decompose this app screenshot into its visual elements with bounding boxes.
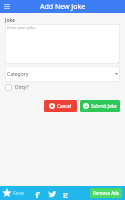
button[interactable]: Category xyxy=(5,66,120,82)
staticText: Fave xyxy=(13,190,24,197)
button[interactable]: Menu xyxy=(2,2,11,11)
staticText: Dirty? xyxy=(15,84,29,91)
button[interactable]: Remove Ads xyxy=(90,188,122,198)
button[interactable]: Enter your joke... xyxy=(5,24,120,64)
staticText: f xyxy=(35,189,40,198)
staticText: Remove Ads xyxy=(93,190,119,196)
staticText: Submit Joke xyxy=(91,103,117,109)
button[interactable]: Facebook xyxy=(33,189,42,198)
staticText: g+ xyxy=(63,188,73,198)
staticText: Cancel xyxy=(57,103,72,109)
button[interactable]: Submit Joke xyxy=(80,100,120,112)
button[interactable]: Twitter xyxy=(47,188,57,198)
button[interactable]: Cancel xyxy=(44,100,77,112)
staticText: Joke xyxy=(5,17,16,24)
button[interactable]: Fave xyxy=(2,188,24,198)
staticText: Category xyxy=(7,71,29,78)
staticText: Add New Joke xyxy=(40,2,86,12)
staticText: Enter your joke... xyxy=(7,25,38,30)
button[interactable]: Dirty? xyxy=(5,84,29,91)
button[interactable]: Google Plus xyxy=(63,188,73,198)
